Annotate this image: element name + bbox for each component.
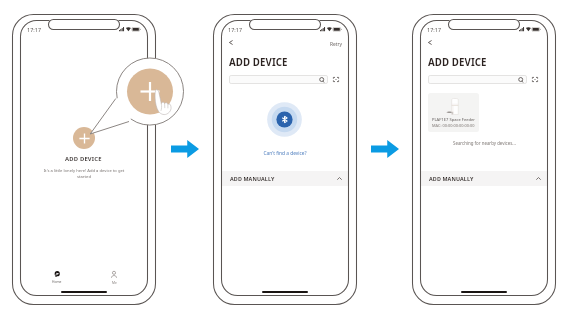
button[interactable]: Scan QR code bbox=[530, 75, 539, 84]
button[interactable]: Back bbox=[225, 37, 236, 48]
staticText: ADD MANUALLY bbox=[429, 175, 474, 182]
button[interactable]: Search devices bbox=[428, 75, 527, 84]
staticText: MAC: 00:00:00:00:00:00 bbox=[432, 123, 475, 128]
staticText: ADD DEVICE bbox=[65, 155, 102, 163]
staticText: PLAF1E7 Space Feeder bbox=[432, 117, 476, 123]
button[interactable]: Add device bbox=[73, 127, 95, 149]
staticText: ADD MANUALLY bbox=[230, 175, 275, 182]
staticText: ADD DEVICE bbox=[229, 56, 288, 69]
staticText: It's a little lonely here! Add a device … bbox=[42, 168, 126, 179]
staticText: Can't find a device? bbox=[263, 150, 307, 157]
button[interactable]: Me bbox=[102, 271, 126, 291]
button[interactable]: PLAF1E7 Space Feeder bbox=[428, 93, 479, 132]
button[interactable]: ADD MANUALLY bbox=[420, 171, 548, 186]
button[interactable]: Search devices bbox=[229, 75, 328, 84]
staticText: 17:17 bbox=[27, 26, 42, 33]
staticText: 17:17 bbox=[427, 26, 442, 33]
staticText: ADD DEVICE bbox=[428, 56, 487, 69]
staticText: Me bbox=[112, 280, 117, 284]
button[interactable]: Retry bbox=[330, 41, 343, 48]
button[interactable]: ADD MANUALLY bbox=[221, 171, 349, 186]
button[interactable]: Can't find a device? bbox=[255, 150, 315, 157]
button[interactable]: Home bbox=[45, 271, 69, 291]
button[interactable]: Back bbox=[424, 37, 435, 48]
staticText: 17:17 bbox=[228, 26, 243, 33]
button[interactable]: Scan QR code bbox=[331, 75, 340, 84]
staticText: Searching for nearby devices... bbox=[453, 140, 516, 146]
staticText: Home bbox=[52, 279, 62, 283]
